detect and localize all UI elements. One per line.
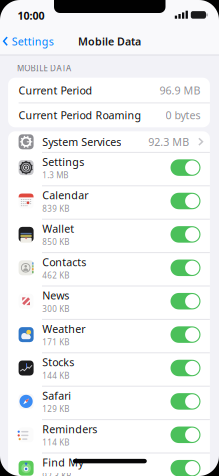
staticText: Calendar	[42, 188, 88, 202]
staticText: Weather	[42, 322, 85, 336]
staticText: Current Period	[19, 83, 93, 97]
staticText: Safari	[42, 388, 71, 403]
button[interactable]: Stocks	[8, 351, 210, 385]
button[interactable]: Safari	[8, 385, 210, 418]
staticText: Reminders	[42, 422, 97, 436]
staticText: Settings	[42, 155, 84, 169]
staticText: Mobile Data	[78, 34, 141, 48]
staticText: 171 KB	[42, 337, 69, 347]
staticText: Contacts	[42, 255, 86, 269]
button[interactable]: Contacts	[8, 251, 210, 284]
staticText: 92.3 KB	[42, 470, 71, 476]
staticText: 10:00	[17, 8, 44, 23]
button[interactable]: System Services	[8, 131, 210, 152]
button[interactable]: News	[8, 284, 210, 318]
button[interactable]: Settings	[8, 151, 210, 184]
staticText: 839 KB	[42, 203, 69, 214]
button[interactable]: Find My	[8, 451, 210, 476]
staticText: 129 KB	[42, 404, 69, 414]
staticText: MOBILE DATA	[17, 63, 71, 73]
button[interactable]: Settings	[3, 34, 54, 48]
staticText: 144 KB	[42, 370, 69, 381]
staticText: Wallet	[42, 221, 74, 236]
staticText: 1.3 MB	[42, 170, 68, 180]
button[interactable]: Wallet	[8, 218, 210, 251]
button[interactable]: Weather	[8, 318, 210, 351]
staticText: 92.3 MB	[148, 135, 189, 149]
staticText: 0 bytes	[165, 108, 200, 122]
staticText: 462 KB	[42, 270, 69, 281]
button[interactable]: Calendar	[8, 184, 210, 218]
staticText: Current Period Roaming	[19, 108, 142, 122]
staticText: 114 KB	[42, 437, 69, 448]
button[interactable]: Reminders	[8, 418, 210, 451]
staticText: 96.9 MB	[159, 83, 200, 97]
staticText: 300 KB	[42, 303, 69, 314]
staticText: System Services	[42, 135, 121, 149]
staticText: Stocks	[42, 355, 74, 369]
staticText: 850 KB	[42, 237, 69, 247]
staticText: Find My	[42, 455, 83, 469]
staticText: Settings	[12, 34, 54, 48]
staticText: News	[42, 288, 69, 302]
